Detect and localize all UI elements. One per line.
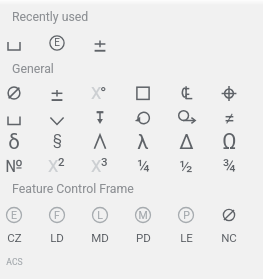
staticText: PD: [136, 231, 151, 244]
button[interactable]: Symbol E: [0, 202, 34, 228]
staticText: X: [91, 157, 102, 176]
staticText: δ: [8, 130, 20, 154]
button[interactable]: PD: [123, 224, 163, 250]
staticText: F: [54, 209, 60, 221]
button[interactable]: Diameter: [0, 80, 34, 106]
button[interactable]: ≠: [209, 105, 249, 131]
staticText: №: [5, 156, 23, 176]
staticText: λ: [137, 130, 149, 154]
button[interactable]: ACS: [0, 249, 34, 275]
staticText: X: [48, 157, 59, 176]
button[interactable]: Plus minus: [80, 32, 120, 58]
staticText: Feature Control Frame: [12, 182, 134, 196]
staticText: M: [138, 209, 148, 221]
button[interactable]: Counterbore: [0, 33, 34, 59]
button[interactable]: δ: [0, 129, 34, 155]
button[interactable]: NC: [209, 224, 249, 250]
button[interactable]: Countersink: [37, 107, 77, 133]
staticText: E: [54, 37, 60, 49]
button[interactable]: ¾: [209, 153, 249, 179]
button[interactable]: Counterbore: [0, 107, 34, 133]
staticText: NC: [221, 231, 237, 244]
staticText: E: [11, 209, 17, 221]
button[interactable]: Total runout: [166, 107, 206, 133]
button[interactable]: Ω: [209, 128, 249, 154]
button[interactable]: Circular runout: [123, 107, 163, 133]
button[interactable]: X: [37, 153, 77, 179]
staticText: ¾: [222, 156, 236, 176]
staticText: CZ: [7, 231, 22, 244]
button[interactable]: Depth: [80, 107, 120, 133]
staticText: 3: [101, 155, 108, 168]
staticText: Recently used: [12, 10, 89, 24]
staticText: Ω: [222, 129, 237, 154]
staticText: LD: [50, 231, 64, 244]
button[interactable]: True position: [209, 80, 249, 106]
button[interactable]: λ: [123, 129, 163, 155]
staticText: ½: [179, 156, 193, 176]
button[interactable]: LE: [166, 224, 206, 250]
button[interactable]: X: [80, 153, 120, 179]
button[interactable]: Symbol F: [37, 202, 77, 228]
button[interactable]: Logical and: [80, 129, 120, 155]
button[interactable]: LD: [37, 224, 77, 250]
staticText: ¼: [137, 156, 150, 176]
staticText: MD: [91, 231, 109, 244]
button[interactable]: Centerline: [166, 80, 206, 106]
button[interactable]: Symbol E: [37, 30, 77, 56]
staticText: L: [97, 209, 103, 221]
button[interactable]: X: [80, 80, 120, 106]
button[interactable]: Symbol M: [123, 202, 163, 228]
button[interactable]: Symbol L: [80, 202, 120, 228]
button[interactable]: Plus minus: [37, 80, 77, 106]
button[interactable]: Square: [123, 80, 163, 106]
staticText: 2: [58, 155, 65, 168]
button[interactable]: Diameter: [209, 202, 249, 228]
button[interactable]: №: [0, 153, 34, 179]
staticText: Δ: [179, 130, 194, 154]
staticText: ACS: [6, 257, 23, 267]
button[interactable]: ¼: [123, 153, 163, 179]
button[interactable]: MD: [80, 224, 120, 250]
button[interactable]: CZ: [0, 224, 34, 250]
staticText: X: [91, 84, 102, 103]
staticText: General: [12, 62, 54, 76]
button[interactable]: Δ: [166, 129, 206, 155]
staticText: °: [100, 83, 107, 103]
staticText: ≠: [224, 107, 235, 129]
button[interactable]: Symbol P: [166, 202, 206, 228]
staticText: P: [183, 209, 190, 221]
staticText: §: [53, 132, 62, 149]
staticText: LE: [180, 231, 193, 244]
button[interactable]: §: [37, 127, 77, 153]
button[interactable]: ½: [166, 153, 206, 179]
